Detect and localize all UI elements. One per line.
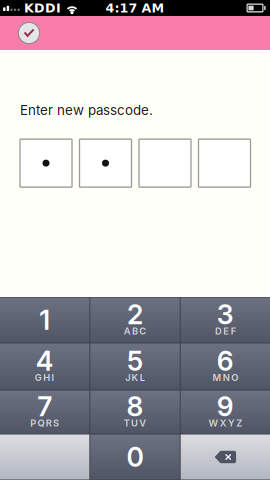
staticText: 6 xyxy=(217,345,234,377)
staticText: Enter new passcode. xyxy=(20,102,153,118)
staticText: 4 xyxy=(36,345,54,377)
button[interactable]: 4 xyxy=(0,343,89,389)
staticText: JKL xyxy=(125,372,145,383)
staticText: GHI xyxy=(35,372,54,383)
staticText: 3 xyxy=(217,298,234,331)
button[interactable]: 3 xyxy=(181,297,270,342)
button[interactable]: 9 xyxy=(181,390,270,433)
button[interactable]: 1 xyxy=(0,297,89,342)
staticText: MNO xyxy=(212,372,238,383)
staticText: 0 xyxy=(126,441,143,473)
staticText: 8 xyxy=(126,390,143,423)
staticText: WXYZ xyxy=(208,417,242,429)
staticText: 1 xyxy=(39,304,50,336)
staticText: KDDI xyxy=(24,1,61,15)
staticText: 2 xyxy=(127,298,143,331)
staticText: 4:17 AM xyxy=(105,1,164,15)
staticText: DEF xyxy=(215,325,236,337)
button[interactable]: Confirm xyxy=(9,16,49,50)
button[interactable]: Delete xyxy=(181,434,270,479)
button[interactable]: Blank xyxy=(0,434,89,479)
button[interactable]: 8 xyxy=(90,390,180,433)
button[interactable]: 0 xyxy=(90,434,180,479)
button[interactable]: 5 xyxy=(90,343,180,389)
staticText: PQRS xyxy=(30,417,59,429)
staticText: ABC xyxy=(124,325,146,337)
staticText: 9 xyxy=(217,390,234,423)
staticText: 5 xyxy=(127,345,143,377)
button[interactable]: 7 xyxy=(0,390,89,433)
staticText: 7 xyxy=(37,390,52,423)
button[interactable]: 2 xyxy=(90,297,180,342)
staticText: TUV xyxy=(124,417,146,429)
button[interactable]: 6 xyxy=(181,343,270,389)
